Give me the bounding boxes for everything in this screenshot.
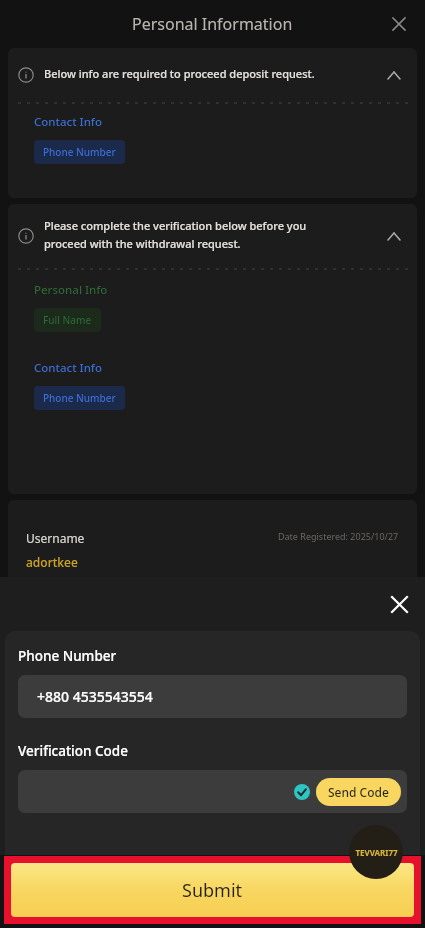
- staticText: Phone Number: [43, 145, 116, 159]
- staticText: proceed with the withdrawal request.: [44, 236, 241, 251]
- staticText: Below info are required to proceed depos…: [44, 66, 315, 81]
- button[interactable]: Full Name: [34, 308, 101, 332]
- staticText: Submit: [182, 878, 243, 903]
- button[interactable]: Close: [381, 586, 417, 622]
- staticText: Please complete the verification below b…: [44, 218, 307, 233]
- button[interactable]: +880 4535543554: [18, 675, 407, 718]
- button[interactable]: Brand badge: [349, 825, 403, 879]
- button[interactable]: Phone Number: [34, 386, 125, 410]
- staticText: Phone Number: [43, 391, 116, 405]
- button[interactable]: Collapse: [381, 223, 407, 249]
- staticText: TEVVARI77: [355, 847, 398, 858]
- staticText: Personal Info: [34, 282, 108, 298]
- staticText: Full Name: [43, 313, 92, 327]
- staticText: Username: [26, 530, 85, 546]
- button[interactable]: Send Code: [18, 770, 407, 813]
- button[interactable]: Close: [383, 8, 415, 40]
- staticText: adortkee: [26, 554, 78, 570]
- staticText: Contact Info: [34, 114, 102, 130]
- staticText: Verification Code: [18, 742, 128, 760]
- staticText: Send Code: [328, 784, 389, 800]
- staticText: +880 4535543554: [37, 687, 153, 706]
- button[interactable]: Collapse: [381, 62, 407, 88]
- staticText: Contact Info: [34, 360, 102, 376]
- button[interactable]: Phone Number: [34, 140, 125, 164]
- button[interactable]: Send Code: [316, 778, 401, 806]
- button[interactable]: Submit: [11, 863, 414, 917]
- staticText: Phone Number: [18, 647, 117, 665]
- staticText: Personal Information: [132, 13, 293, 35]
- staticText: Date Registered: 2025/10/27: [278, 530, 399, 542]
